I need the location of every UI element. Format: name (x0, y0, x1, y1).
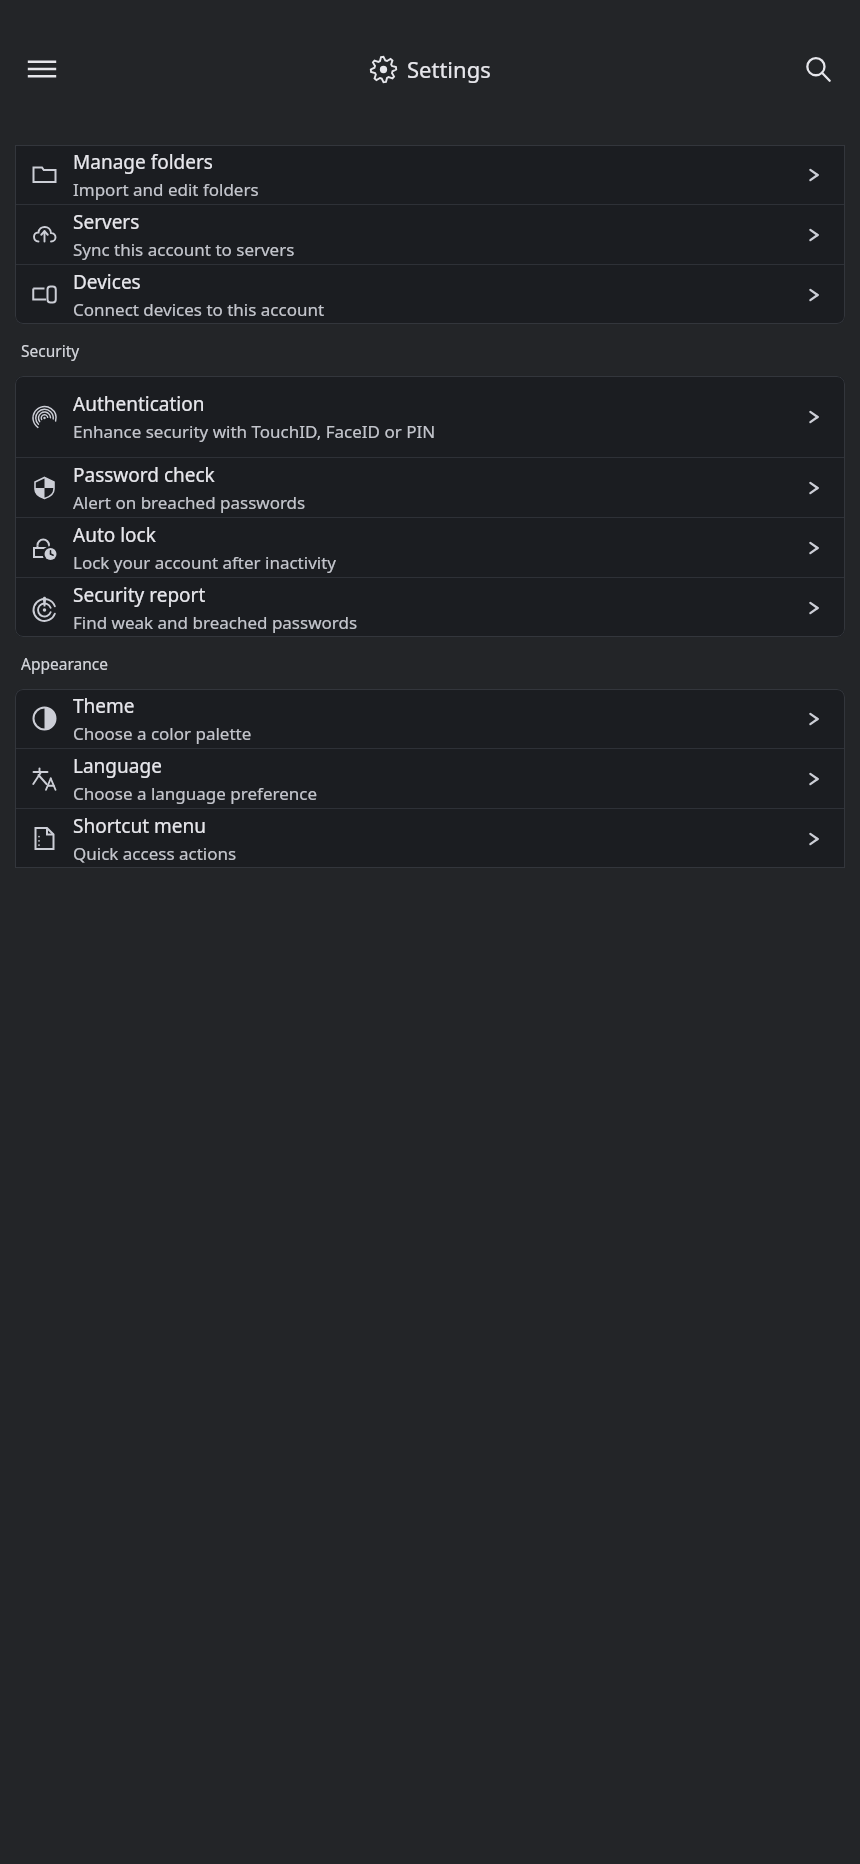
staticText: Import and edit folders (73, 178, 259, 201)
button[interactable]: Authentication (15, 376, 845, 457)
button[interactable]: Password check (15, 458, 845, 517)
staticText: Quick access actions (73, 842, 237, 865)
staticText: Settings (407, 54, 491, 84)
button[interactable]: Search (790, 41, 846, 97)
staticText: Find weak and breached passwords (73, 611, 358, 634)
staticText: Choose a language preference (73, 782, 318, 805)
button[interactable]: Shortcut menu (15, 809, 845, 868)
button[interactable]: Security report (15, 578, 845, 637)
staticText: Alert on breached passwords (73, 491, 306, 514)
staticText: Sync this account to servers (73, 238, 295, 261)
staticText: Devices (73, 269, 141, 295)
staticText: Choose a color palette (73, 722, 252, 745)
staticText: Appearance (21, 653, 108, 674)
button[interactable]: Manage folders (15, 145, 845, 204)
staticText: Servers (73, 209, 140, 235)
staticText: Security (21, 340, 80, 361)
staticText: Password check (73, 462, 215, 488)
button[interactable]: Servers (15, 205, 845, 264)
staticText: Language (73, 753, 162, 779)
staticText: Theme (73, 693, 135, 719)
staticText: Connect devices to this account (73, 298, 325, 321)
button[interactable]: Language (15, 749, 845, 808)
staticText: Manage folders (73, 149, 213, 175)
staticText: Authentication (73, 391, 205, 417)
button[interactable]: Theme (15, 689, 845, 748)
staticText: Auto lock (73, 522, 156, 548)
staticText: Enhance security with TouchID, FaceID or… (73, 420, 436, 443)
staticText: Shortcut menu (73, 813, 207, 839)
staticText: Security report (73, 582, 206, 608)
staticText: Lock your account after inactivity (73, 551, 336, 574)
button[interactable]: Auto lock (15, 518, 845, 577)
button[interactable]: Devices (15, 265, 845, 324)
button[interactable]: Open navigation menu (14, 41, 70, 97)
